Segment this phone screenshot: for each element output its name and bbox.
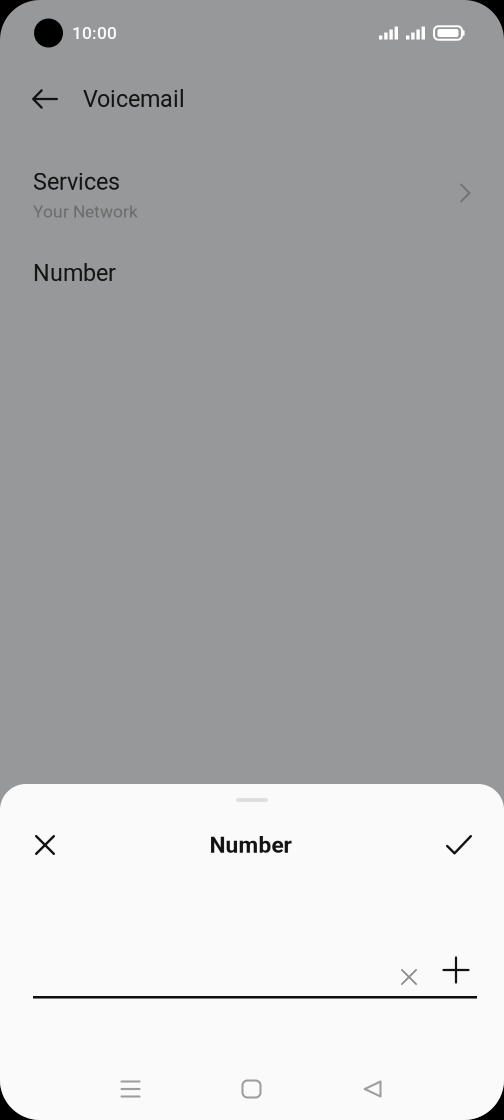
button[interactable]: Add	[443, 948, 477, 991]
staticText: Number	[33, 259, 116, 287]
button[interactable]: Confirm	[426, 822, 504, 868]
staticText: Your Network	[33, 201, 138, 222]
button[interactable]: Number	[0, 238, 504, 308]
button[interactable]: Back	[0, 66, 83, 132]
staticText: Voicemail	[83, 85, 185, 113]
button[interactable]: Services	[0, 152, 504, 238]
button[interactable]: Home	[191, 1067, 312, 1111]
button[interactable]: Cancel	[0, 822, 75, 868]
staticText: 10:00	[72, 23, 117, 43]
button[interactable]: Clear	[387, 948, 443, 991]
staticText: Services	[33, 168, 120, 195]
staticText: Number	[209, 832, 291, 858]
button[interactable]: Back	[312, 1067, 433, 1111]
button[interactable]: Recents	[70, 1067, 191, 1111]
